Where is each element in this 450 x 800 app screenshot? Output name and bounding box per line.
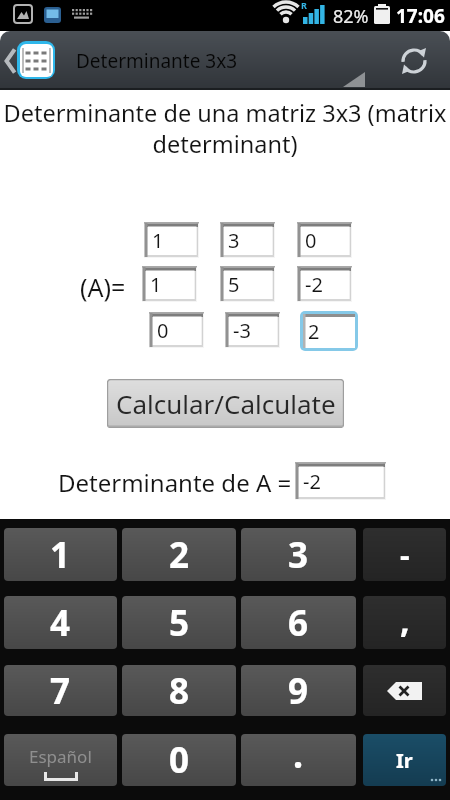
staticText: 4 [50,599,71,647]
button[interactable]: , [363,596,446,649]
staticText: R [301,0,307,11]
staticText: 2 [169,531,190,579]
staticText: 7 [50,667,71,715]
staticText: 1 [152,227,164,254]
staticText: 0 [157,317,169,344]
button[interactable]: 5 [122,596,236,649]
staticText: -2 [303,468,321,495]
staticText: 3 [288,531,309,579]
staticText: Español [29,745,92,768]
staticText: 17:06 [396,3,445,29]
button[interactable]: Determinante 3x3 [14,31,366,90]
button[interactable]: 6 [241,596,356,649]
button[interactable]: 4 [4,596,117,649]
button[interactable]: 2 [300,311,358,351]
button[interactable]: 0 [122,734,236,786]
staticText: 1 [50,531,71,579]
button[interactable]: Calcular/Calculate [107,379,344,428]
button[interactable]: . [241,734,356,786]
staticText: Determinante 3x3 [76,48,238,74]
button[interactable]: 8 [122,665,236,716]
staticText: 3 [228,227,240,254]
staticText: Ir [396,747,413,774]
staticText: , [400,597,410,643]
button[interactable] [384,31,444,90]
staticText: 0 [169,736,190,784]
button[interactable]: -2 [297,266,352,302]
staticText: 82% [333,4,369,29]
button[interactable]: - [363,528,446,581]
button[interactable]: 3 [241,528,356,581]
button[interactable]: 0 [149,312,204,348]
staticText: Determinante de una matriz 3x3 (matrix d… [0,97,450,159]
staticText: -3 [233,317,251,344]
button[interactable]: 1 [142,266,197,302]
button[interactable]: 7 [4,665,117,716]
button[interactable] [363,665,446,716]
button[interactable]: -2 [295,462,386,500]
staticText: 8 [169,667,190,715]
staticText: 0 [305,227,317,254]
button[interactable]: 3 [220,222,275,258]
staticText: 1 [150,271,162,298]
staticText: 6 [288,599,309,647]
staticText: -2 [305,271,323,298]
staticText: . [293,734,304,779]
staticText: 9 [288,667,309,715]
staticText: 2 [308,318,320,345]
button[interactable]: 0 [297,222,352,258]
staticText: Determinante de A = [58,466,298,499]
staticText: 5 [228,271,240,298]
button[interactable]: 9 [241,665,356,716]
staticText: Calcular/Calculate [116,386,336,421]
button[interactable]: Español [4,734,117,786]
staticText: - [400,534,410,575]
button[interactable]: 2 [122,528,236,581]
button[interactable]: 5 [220,266,275,302]
button[interactable]: Ir [363,734,446,786]
button[interactable]: 1 [4,528,117,581]
staticText: (A)= [80,270,126,304]
staticText: 5 [169,599,190,647]
button[interactable]: 1 [144,222,199,258]
button[interactable]: -3 [225,312,280,348]
